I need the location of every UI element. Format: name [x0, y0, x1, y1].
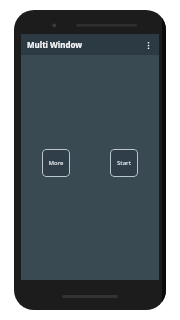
button[interactable]: Start [110, 149, 138, 177]
staticText: More [48, 159, 64, 167]
button[interactable]: More options [140, 37, 156, 53]
staticText: Multi Window [27, 39, 83, 50]
staticText: Start [117, 159, 131, 167]
button[interactable]: More [42, 149, 70, 177]
